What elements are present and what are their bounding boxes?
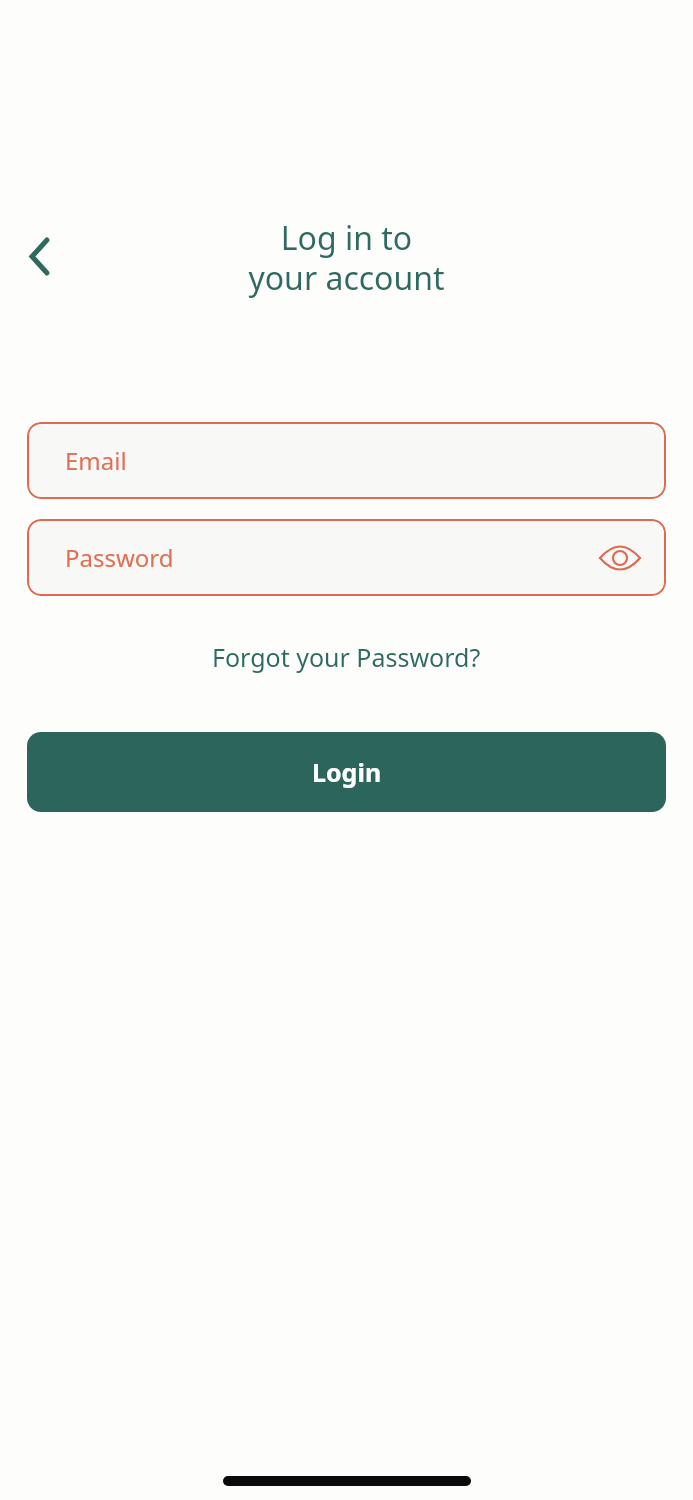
button[interactable] xyxy=(14,232,62,280)
button[interactable]: Email xyxy=(27,422,666,499)
staticText: Login xyxy=(312,755,382,789)
button[interactable]: Login xyxy=(27,732,666,812)
staticText: Password xyxy=(65,541,174,574)
staticText: Email xyxy=(65,444,127,477)
button[interactable]: Password xyxy=(27,519,666,596)
staticText: Log in to your account xyxy=(0,216,693,300)
staticText: Forgot your Password? xyxy=(212,640,481,674)
button[interactable]: Forgot your Password? xyxy=(212,640,481,674)
